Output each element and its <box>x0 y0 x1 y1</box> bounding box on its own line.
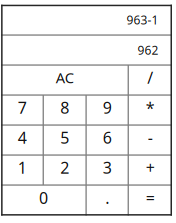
button[interactable]: 6 <box>0 0 128 155</box>
staticText: 962 <box>137 42 158 58</box>
staticText: 6 <box>103 127 112 148</box>
button[interactable]: = <box>0 0 172 216</box>
staticText: * <box>146 97 155 118</box>
button[interactable]: 0 <box>0 0 86 216</box>
button[interactable]: AC <box>0 0 128 95</box>
button[interactable]: - <box>0 0 172 155</box>
staticText: 0 <box>39 187 48 208</box>
staticText: AC <box>56 68 74 87</box>
button[interactable]: 2 <box>0 0 86 185</box>
button[interactable]: + <box>0 0 172 185</box>
staticText: 4 <box>18 127 27 148</box>
staticText: / <box>147 67 153 88</box>
staticText: - <box>148 127 153 148</box>
staticText: 2 <box>60 157 69 178</box>
staticText: 1 <box>18 157 27 178</box>
staticText: . <box>105 187 109 208</box>
button[interactable]: 8 <box>0 0 86 125</box>
staticText: 7 <box>18 97 27 118</box>
staticText: 9 <box>103 97 112 118</box>
button[interactable]: * <box>0 0 172 125</box>
staticText: 963-1 <box>126 12 158 28</box>
staticText: 8 <box>60 97 69 118</box>
button[interactable]: 5 <box>0 0 86 155</box>
button[interactable]: 4 <box>0 0 43 155</box>
staticText: 3 <box>103 157 112 178</box>
button[interactable]: . <box>0 0 128 216</box>
button[interactable]: 7 <box>0 0 43 125</box>
staticText: + <box>146 157 155 178</box>
button[interactable]: 9 <box>0 0 128 125</box>
button[interactable]: 1 <box>0 0 43 185</box>
staticText: 5 <box>60 127 69 148</box>
button[interactable]: / <box>0 0 172 95</box>
staticText: = <box>146 187 155 208</box>
button[interactable]: 3 <box>0 0 128 185</box>
